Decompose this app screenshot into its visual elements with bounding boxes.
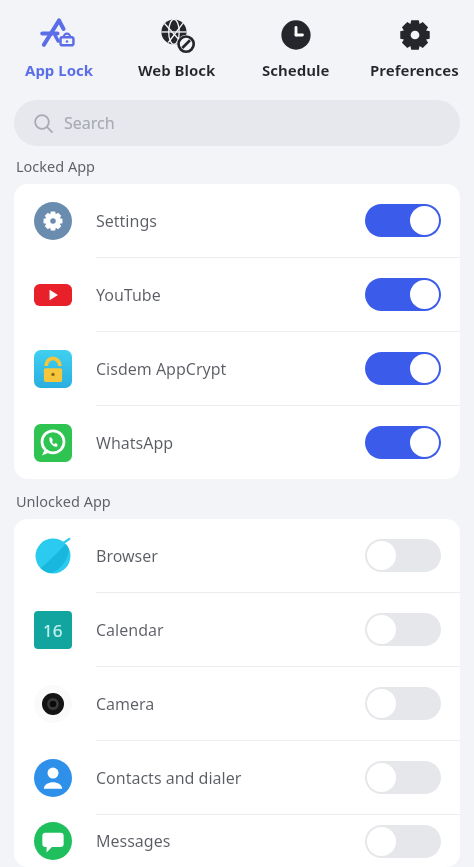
button[interactable]: Browser: [14, 519, 460, 592]
button[interactable]: Unlocked, off: [365, 687, 441, 720]
button[interactable]: Unlocked, off: [365, 613, 441, 646]
button[interactable]: Unlocked, off: [365, 825, 441, 858]
staticText: Camera: [96, 693, 155, 715]
button[interactable]: Unlocked, off: [365, 761, 441, 794]
staticText: App Lock: [25, 60, 94, 80]
staticText: Web Block: [138, 60, 216, 80]
button[interactable]: Camera: [14, 667, 460, 740]
button[interactable]: Schedule: [236, 0, 355, 80]
button[interactable]: Unlocked, off: [365, 539, 441, 572]
button[interactable]: App Lock: [0, 0, 118, 80]
button[interactable]: Locked, on: [365, 352, 441, 385]
button[interactable]: WhatsApp: [14, 406, 460, 479]
staticText: Settings: [96, 210, 157, 232]
staticText: Contacts and dialer: [96, 767, 242, 789]
button[interactable]: Web Block: [118, 0, 236, 80]
staticText: Schedule: [262, 60, 330, 80]
button[interactable]: Locked, on: [365, 278, 441, 311]
button[interactable]: Locked, on: [365, 204, 441, 237]
button[interactable]: Contacts and dialer: [14, 741, 460, 814]
button[interactable]: Search: [14, 100, 460, 146]
other: App Lock: [40, 16, 78, 54]
other: Web Block: [158, 16, 196, 54]
button[interactable]: Preferences: [355, 0, 474, 80]
button[interactable]: YouTube: [14, 258, 460, 331]
staticText: YouTube: [96, 284, 161, 306]
button[interactable]: Cisdem AppCrypt: [14, 332, 460, 405]
other: Preferences: [396, 16, 434, 54]
staticText: Calendar: [96, 619, 164, 641]
button[interactable]: Locked, on: [365, 426, 441, 459]
staticText: Locked App: [16, 156, 96, 176]
staticText: Cisdem AppCrypt: [96, 358, 227, 380]
staticText: WhatsApp: [96, 432, 174, 454]
button[interactable]: Settings: [14, 184, 460, 257]
staticText: Messages: [96, 830, 171, 852]
other: Schedule: [277, 16, 315, 54]
staticText: 16: [43, 619, 63, 642]
staticText: Search: [64, 112, 115, 134]
button[interactable]: 16: [14, 593, 460, 666]
staticText: Unlocked App: [16, 491, 111, 511]
staticText: Preferences: [370, 60, 459, 80]
staticText: Browser: [96, 545, 158, 567]
button[interactable]: Messages: [14, 815, 460, 867]
